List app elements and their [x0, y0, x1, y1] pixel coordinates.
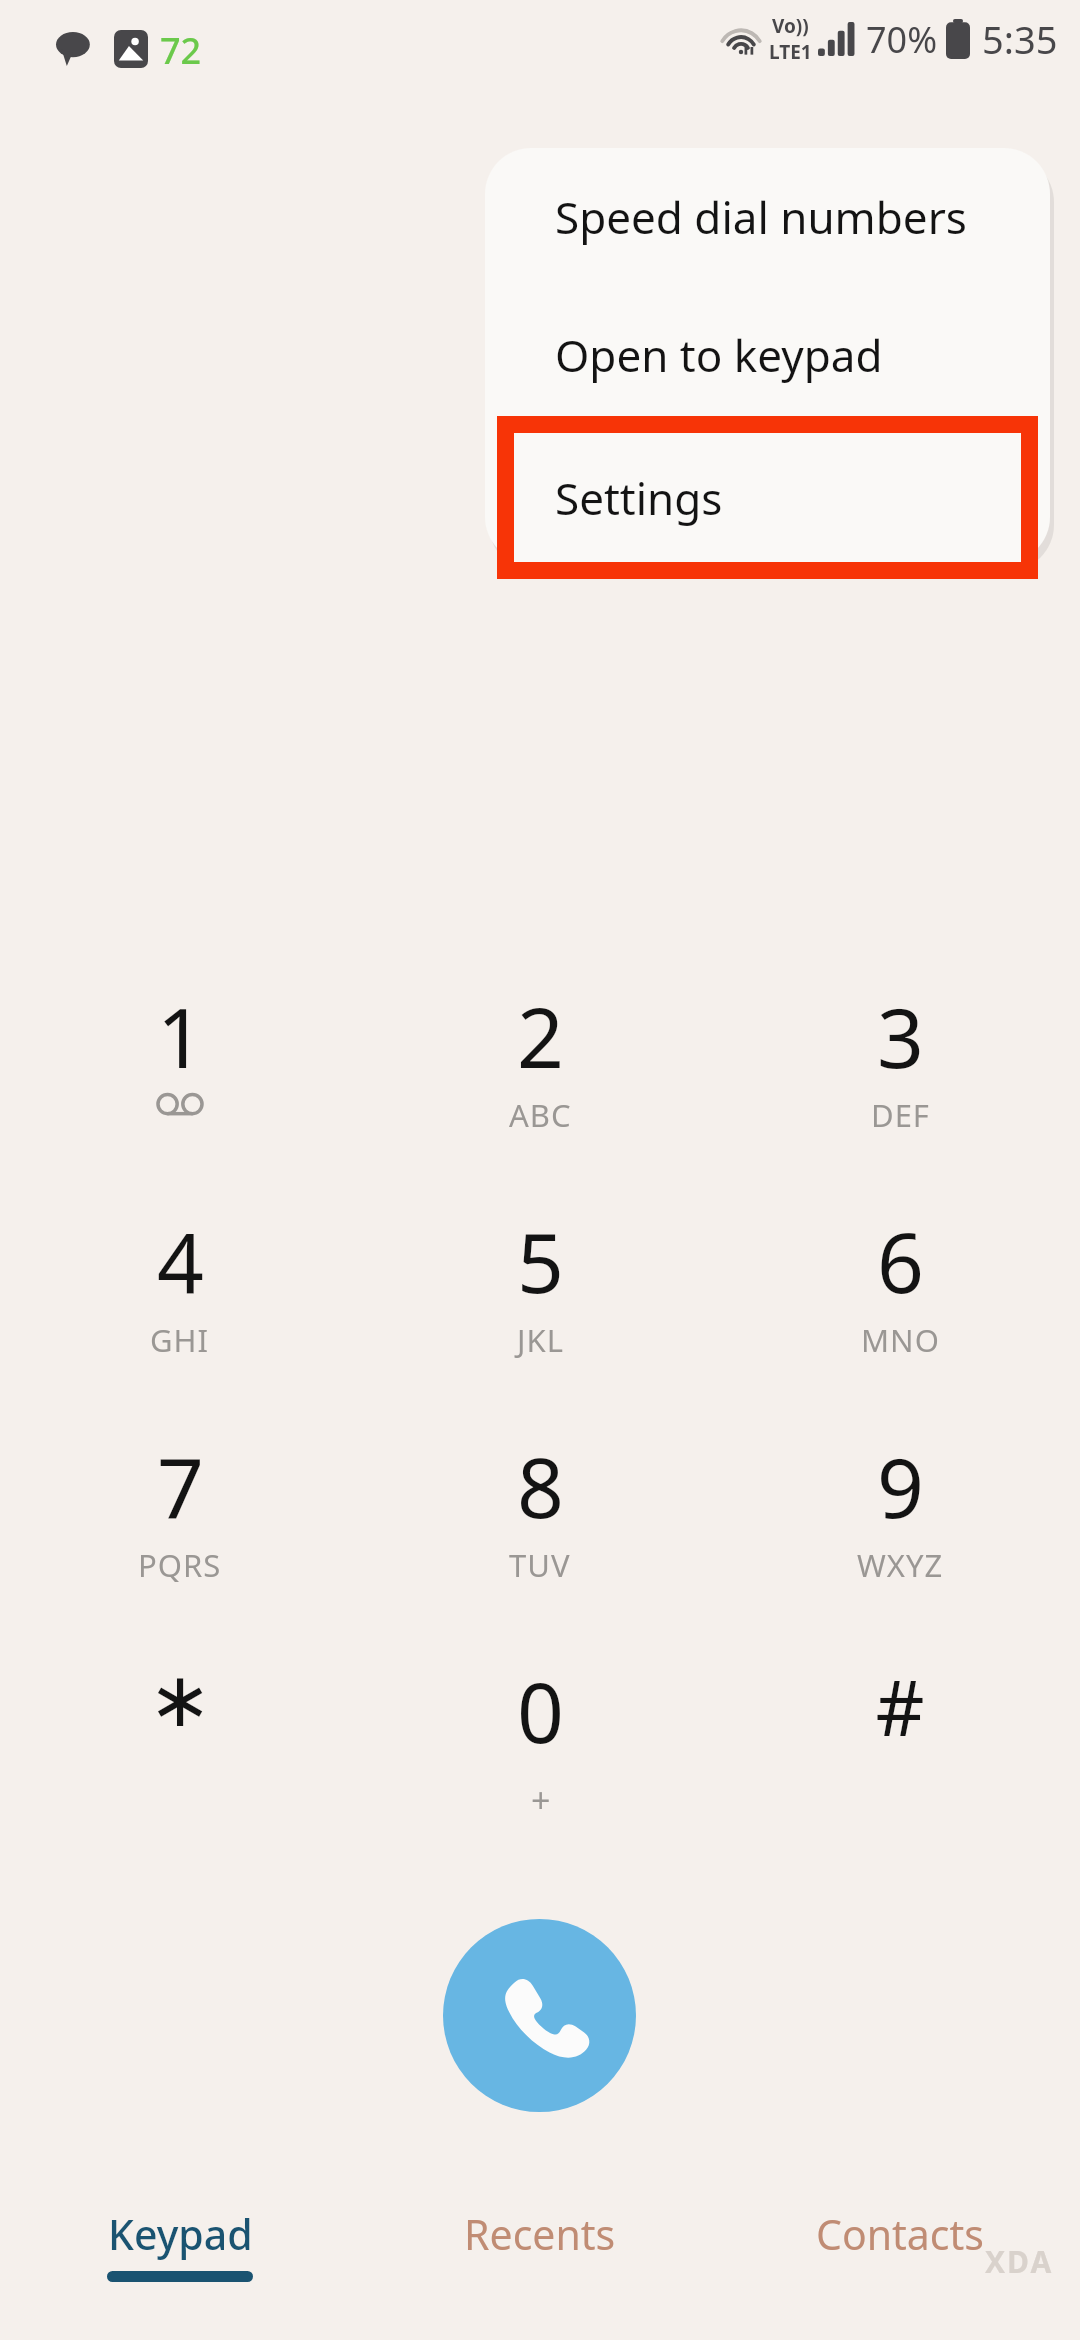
staticText: LTE1 [769, 39, 812, 65]
staticText: Keypad [108, 2206, 253, 2262]
staticText: Settings [555, 463, 723, 523]
button[interactable]: 0 [360, 1655, 720, 1880]
button[interactable]: Settings [514, 433, 1021, 562]
staticText: Open to keypad [555, 325, 883, 385]
button[interactable]: # [720, 1655, 1080, 1880]
staticText: WXYZ [857, 1544, 944, 1586]
staticText: TUV [509, 1544, 571, 1586]
staticText: 7 [157, 1430, 204, 1542]
button[interactable]: 3 [720, 980, 1080, 1205]
button[interactable]: 7 [0, 1430, 360, 1655]
button[interactable]: 4 [0, 1205, 360, 1430]
staticText: + [531, 1777, 551, 1823]
staticText: Vo)) [772, 13, 809, 39]
staticText: 72 [160, 26, 202, 75]
staticText: 0 [517, 1655, 564, 1767]
button[interactable]: 2 [360, 980, 720, 1205]
button[interactable]: Contacts [720, 2170, 1080, 2340]
staticText: ABC [509, 1094, 572, 1136]
button[interactable]: 9 [720, 1430, 1080, 1655]
button[interactable]: 5 [360, 1205, 720, 1430]
staticText: Speed dial numbers [555, 187, 967, 247]
staticText: GHI [150, 1319, 210, 1361]
staticText: 8 [517, 1430, 564, 1542]
staticText: 6 [877, 1205, 924, 1317]
staticText: # [875, 1655, 925, 1759]
staticText: 3 [877, 980, 924, 1092]
button[interactable]: 6 [720, 1205, 1080, 1430]
staticText: ∗ [148, 1655, 212, 1743]
staticText: JKL [517, 1319, 564, 1361]
staticText: Recents [464, 2206, 616, 2262]
staticText: 5 [517, 1205, 564, 1317]
staticText: 70% [866, 15, 938, 64]
staticText: Contacts [816, 2206, 984, 2262]
staticText: XDA [985, 2241, 1054, 2282]
button[interactable]: Speed dial numbers [485, 148, 1050, 286]
button[interactable]: 1 [0, 980, 360, 1205]
button[interactable]: ∗ [0, 1655, 360, 1880]
staticText: 9 [877, 1430, 924, 1542]
button[interactable]: Keypad [0, 2170, 360, 2340]
staticText: Settings [555, 468, 723, 528]
staticText: 5:35 [982, 13, 1058, 65]
staticText: DEF [871, 1094, 930, 1136]
button[interactable]: Call [443, 1919, 636, 2112]
staticText: PQRS [138, 1544, 222, 1586]
staticText: MNO [861, 1319, 940, 1361]
staticText: 1 [157, 980, 204, 1092]
button[interactable]: Open to keypad [485, 286, 1050, 424]
staticText: 2 [517, 980, 564, 1092]
button[interactable]: 8 [360, 1430, 720, 1655]
button[interactable]: Recents [360, 2170, 720, 2340]
staticText: 4 [157, 1205, 204, 1317]
button[interactable]: Settings [485, 424, 1050, 562]
